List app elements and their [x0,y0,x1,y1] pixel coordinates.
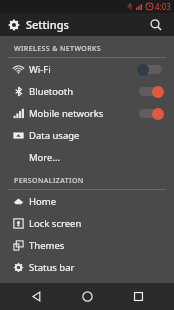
staticText: Themes [29,239,65,252]
staticText: Status bar [29,261,75,274]
button[interactable]: Themes [0,234,174,256]
button[interactable]: Data usage [0,124,174,146]
staticText: Wi-Fi [29,63,51,76]
button[interactable]: Wi-Fi [0,58,174,80]
staticText: Bluetooth [29,85,74,98]
button[interactable]: Mobile networks [0,102,174,124]
staticText: 4:03 [155,1,171,12]
button[interactable]: Home [72,283,102,310]
button[interactable]: More... [0,146,174,168]
button[interactable]: Back [21,283,51,310]
staticText: Settings [26,17,69,32]
staticText: Mobile networks [29,107,104,120]
staticText: Data usage [29,129,80,142]
staticText: More... [29,151,61,164]
button[interactable]: On [137,107,164,120]
staticText: Lock screen [29,217,82,230]
staticText: PERSONALIZATION [14,176,84,186]
staticText: WIRELESS & NETWORKS [14,44,102,54]
button[interactable]: Search [146,15,166,35]
button[interactable]: Status bar [0,256,174,278]
button[interactable]: On [137,85,164,98]
staticText: Home [29,195,57,208]
button[interactable]: Off [137,63,164,76]
button[interactable]: Home [0,190,174,212]
button[interactable]: Recents [123,283,153,310]
button[interactable]: Bluetooth [0,80,174,102]
button[interactable]: Lock screen [0,212,174,234]
